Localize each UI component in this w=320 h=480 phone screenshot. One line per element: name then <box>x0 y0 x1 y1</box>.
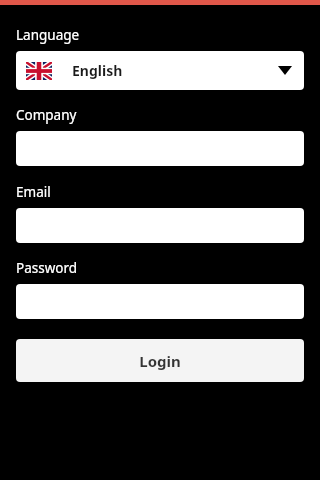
staticText: Company <box>16 106 77 124</box>
button[interactable]: English <box>16 51 304 90</box>
other: Open language list <box>278 66 292 75</box>
staticText: Email <box>16 183 51 201</box>
staticText: Language <box>16 26 80 44</box>
button[interactable]: Login <box>16 339 304 382</box>
button[interactable] <box>16 131 304 166</box>
staticText: Password <box>16 259 78 277</box>
staticText: Login <box>139 351 181 371</box>
staticText: English <box>72 61 123 80</box>
button[interactable] <box>16 208 304 243</box>
button[interactable] <box>16 284 304 319</box>
